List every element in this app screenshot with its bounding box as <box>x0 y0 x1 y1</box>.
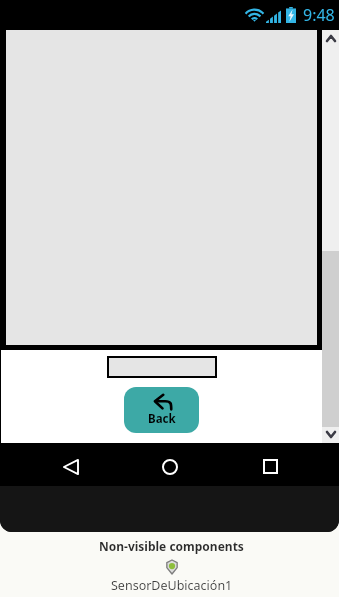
button[interactable] <box>107 356 217 378</box>
staticText: Back <box>148 411 176 427</box>
button[interactable]: Scroll down <box>322 426 339 443</box>
staticText: Non-visible components <box>99 538 244 554</box>
button[interactable]: Back <box>124 387 199 433</box>
button[interactable]: Home <box>145 445 195 488</box>
button[interactable]: Recents <box>245 445 295 488</box>
button[interactable]: SensorDeUbicación1 <box>111 560 233 594</box>
button[interactable]: Back <box>45 445 95 488</box>
button[interactable]: Scroll up <box>322 30 339 47</box>
staticText: 9:48 <box>303 4 335 26</box>
staticText: SensorDeUbicación1 <box>111 577 233 594</box>
